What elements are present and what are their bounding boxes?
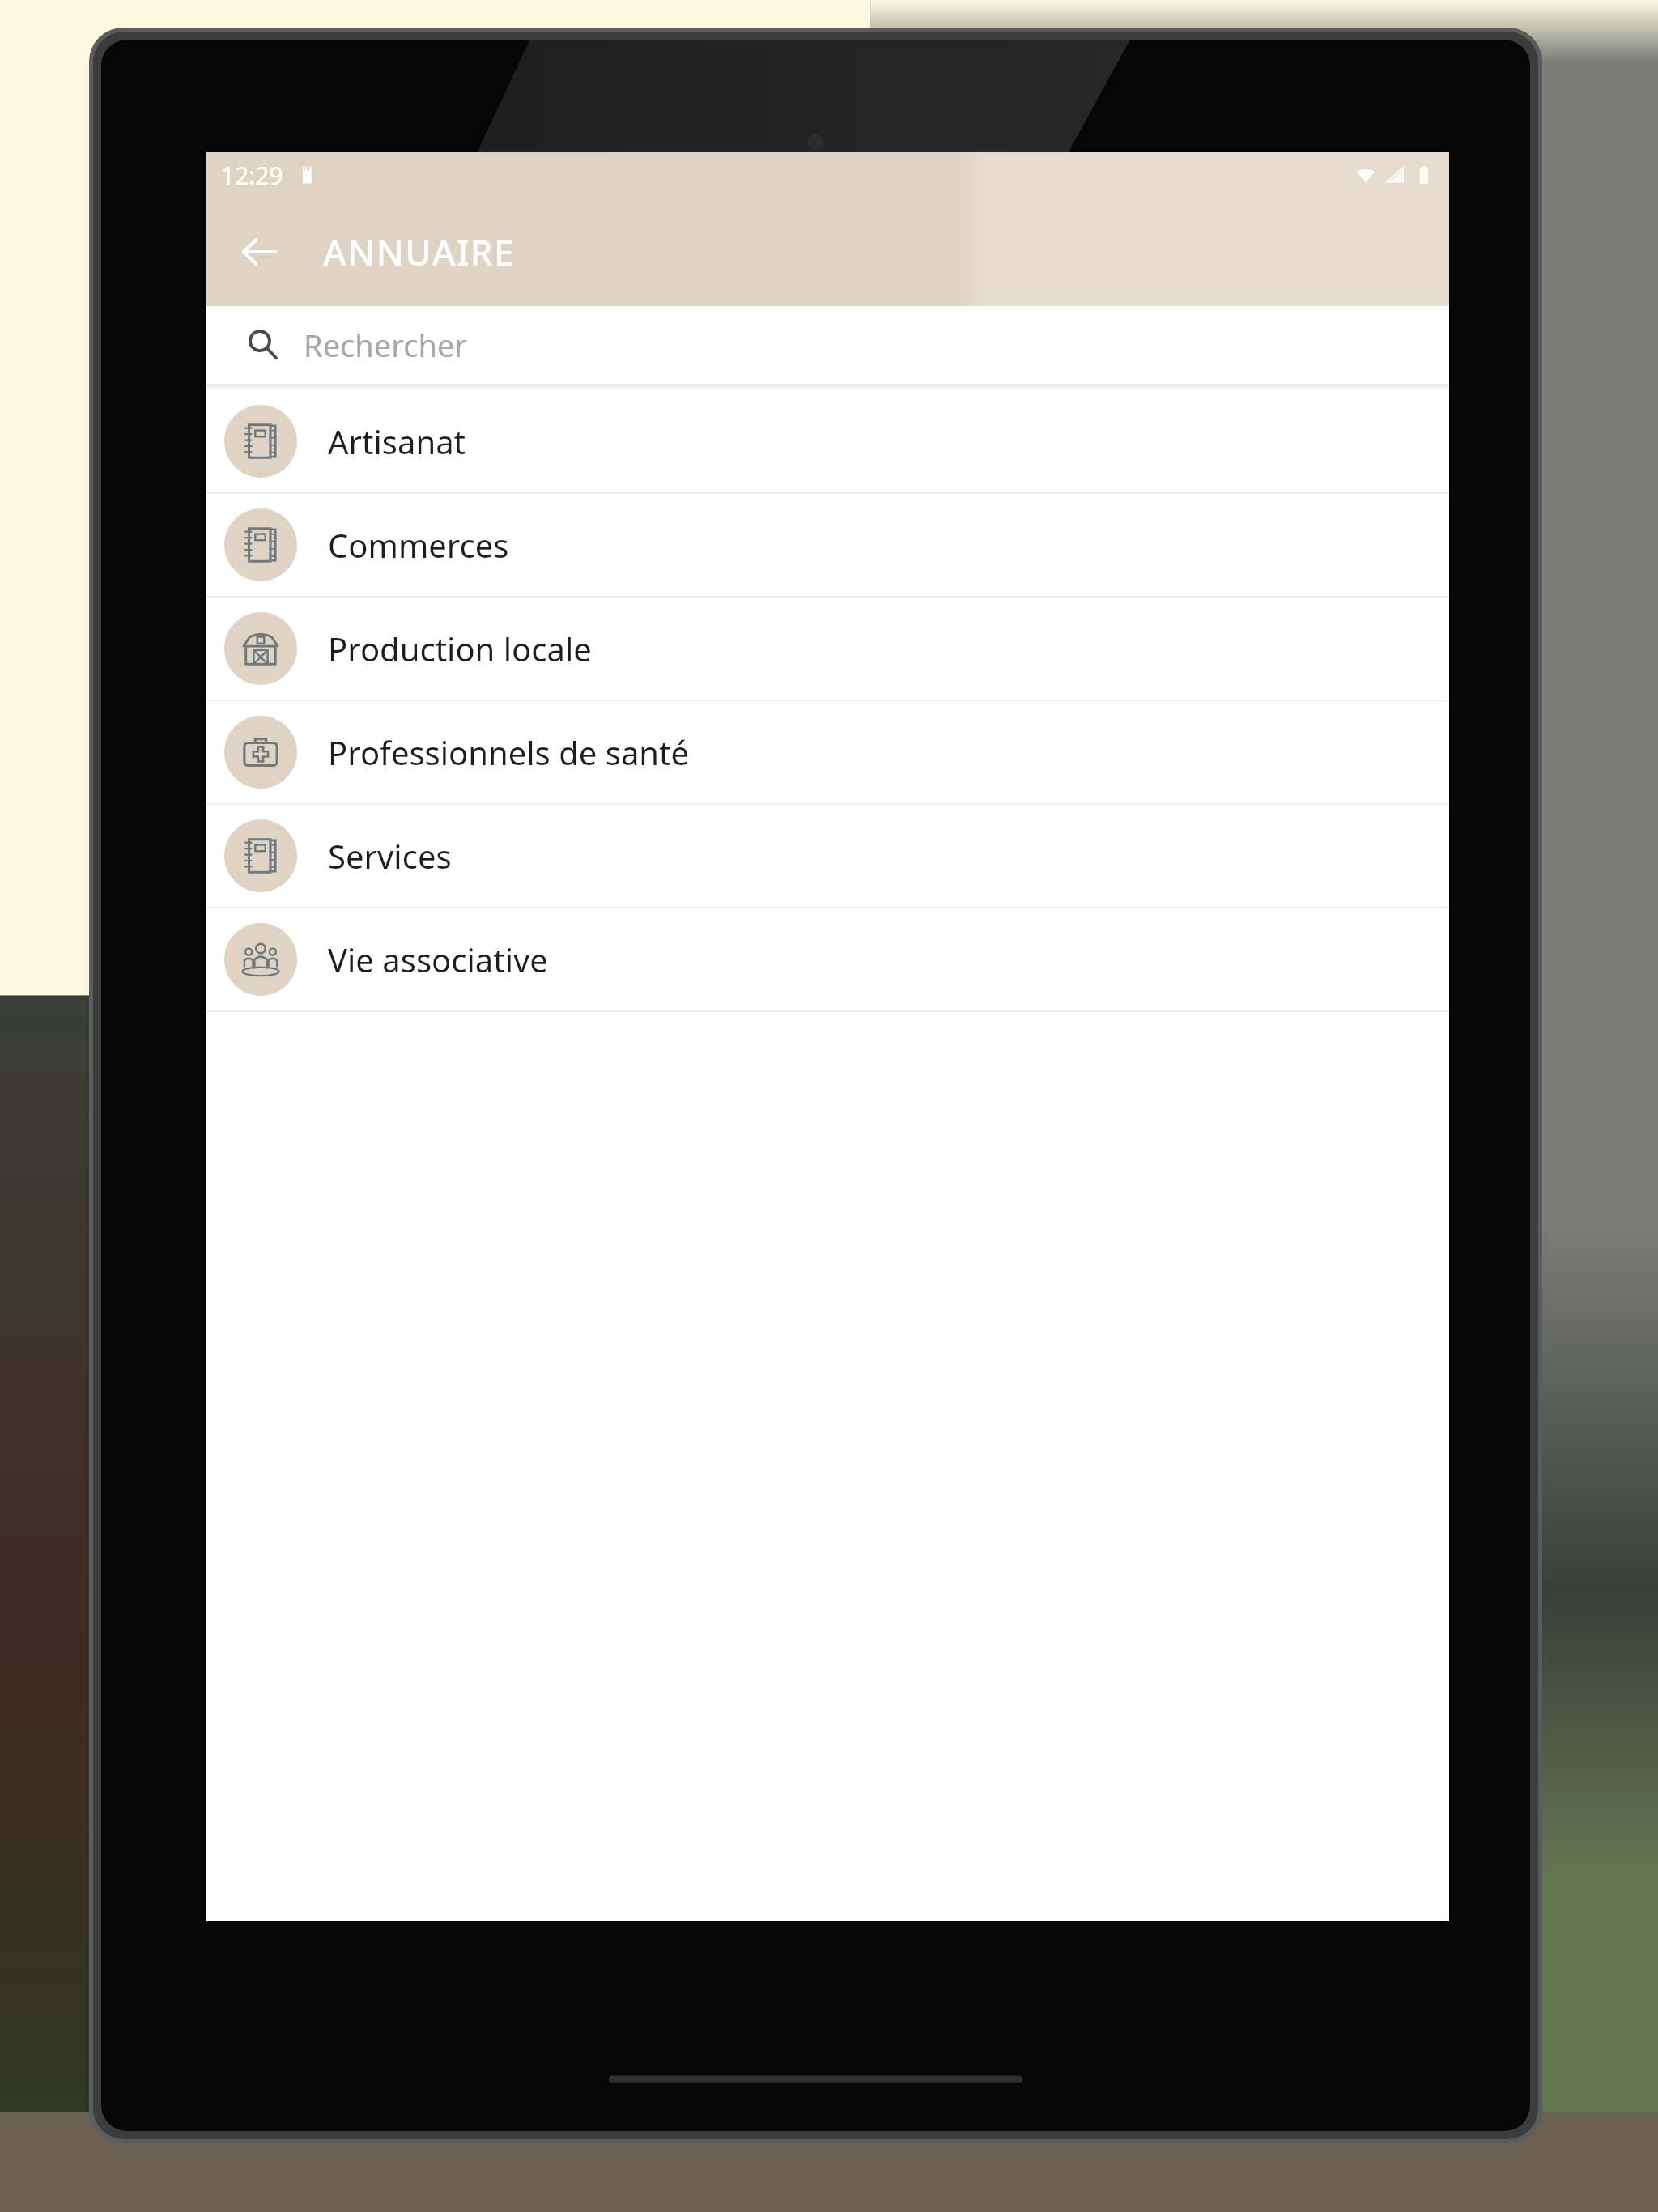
staticText: ANNUAIRE (323, 228, 515, 276)
staticText: Rechercher (304, 324, 468, 366)
staticText: 12:29 (221, 159, 283, 192)
button[interactable]: Rechercher (216, 306, 1439, 384)
button[interactable]: Production locale (206, 598, 1449, 700)
staticText: Vie associative (328, 938, 548, 981)
button[interactable]: Services (206, 805, 1449, 907)
staticText: Services (328, 834, 452, 878)
button[interactable]: Back (224, 217, 294, 287)
button[interactable]: Professionnels de santé (206, 701, 1449, 803)
button[interactable]: Artisanat (206, 390, 1449, 492)
staticText: Professionnels de santé (328, 730, 690, 774)
staticText: Commerces (328, 523, 509, 567)
staticText: Artisanat (328, 419, 466, 463)
staticText: Production locale (328, 627, 592, 670)
button[interactable]: Vie associative (206, 908, 1449, 1010)
button[interactable]: Commerces (206, 494, 1449, 596)
